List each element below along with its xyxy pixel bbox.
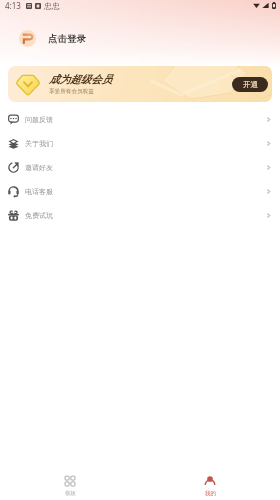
button[interactable]: 点击登录 [0,28,280,49]
staticText: 4:13 [5,0,21,11]
button[interactable]: 关于我们 [0,131,280,155]
button[interactable]: 开通 [232,77,268,92]
staticText: 成为超级会员 [49,73,112,86]
staticText: 电话客服 [25,187,53,196]
staticText: 免费试玩 [25,211,53,220]
button[interactable]: 我的 [140,473,280,500]
button[interactable]: 免费试玩 [0,203,280,227]
staticText: 点击登录 [48,33,86,45]
staticText: 模板 [65,490,76,497]
staticText: 忠忠 [44,1,60,11]
staticText: 我的 [205,490,216,497]
staticText: 问题反馈 [25,115,53,124]
button[interactable]: 邀请好友 [0,155,280,179]
staticText: 开通 [243,80,258,89]
staticText: 享受所有会员权益 [49,88,94,95]
button[interactable]: 模板 [0,473,140,500]
button[interactable]: 问题反馈 [0,107,280,131]
button[interactable]: 电话客服 [0,179,280,203]
staticText: 关于我们 [25,139,53,148]
staticText: 邀请好友 [25,163,53,172]
button[interactable]: 成为超级会员 [8,66,272,102]
